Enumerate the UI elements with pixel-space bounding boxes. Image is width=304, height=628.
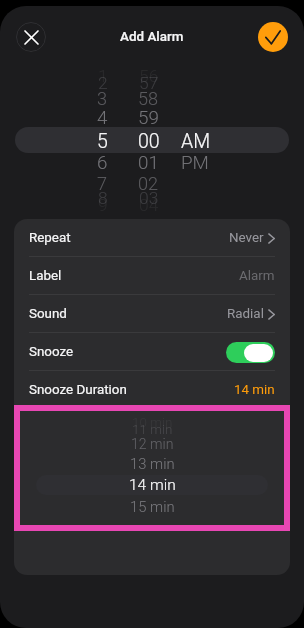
staticText: 14 min — [129, 476, 176, 494]
staticText: Add Alarm — [120, 29, 184, 45]
button[interactable]: Confirm — [258, 22, 288, 52]
staticText: 4 — [97, 107, 108, 129]
staticText: 15 min — [130, 498, 175, 515]
button[interactable]: Close — [16, 22, 46, 52]
staticText: 8 — [98, 188, 108, 208]
staticText: 6 — [97, 152, 108, 174]
staticText: Never — [229, 230, 264, 246]
button[interactable]: Snooze toggle — [226, 342, 275, 363]
button[interactable]: Snooze Duration — [14, 371, 290, 409]
staticText: 11 min — [132, 422, 173, 438]
button[interactable]: Sound — [14, 295, 290, 333]
staticText: Alarm — [239, 268, 275, 284]
staticText: Sound — [29, 306, 67, 322]
button[interactable]: Snooze — [14, 333, 290, 371]
staticText: 14 min — [234, 382, 275, 398]
staticText: 57 — [139, 73, 159, 93]
staticText: 59 — [138, 107, 159, 129]
staticText: Radial — [227, 306, 264, 322]
staticText: 13 min — [130, 455, 175, 472]
staticText: 02 — [138, 173, 159, 194]
staticText: 58 — [138, 88, 159, 109]
staticText: 56 — [139, 66, 159, 86]
staticText: Snooze — [29, 344, 74, 360]
staticText: PM — [181, 152, 209, 174]
staticText: 00 — [138, 130, 160, 152]
staticText: Label — [29, 268, 62, 284]
staticText: 01 — [138, 152, 159, 174]
staticText: 2 — [98, 73, 108, 93]
button[interactable]: Label — [14, 257, 290, 295]
staticText: 04 — [139, 195, 159, 215]
staticText: AM — [181, 130, 211, 152]
staticText: 1 — [98, 66, 108, 86]
staticText: 3 — [97, 88, 108, 109]
button[interactable]: Repeat — [14, 219, 290, 257]
staticText: 10 min — [132, 415, 173, 431]
staticText: 12 min — [131, 436, 174, 453]
staticText: 9 — [98, 195, 108, 215]
staticText: Repeat — [29, 230, 71, 246]
staticText: Snooze Duration — [29, 382, 127, 398]
staticText: 5 — [97, 130, 108, 152]
staticText: 7 — [97, 173, 108, 194]
staticText: 03 — [139, 188, 159, 208]
